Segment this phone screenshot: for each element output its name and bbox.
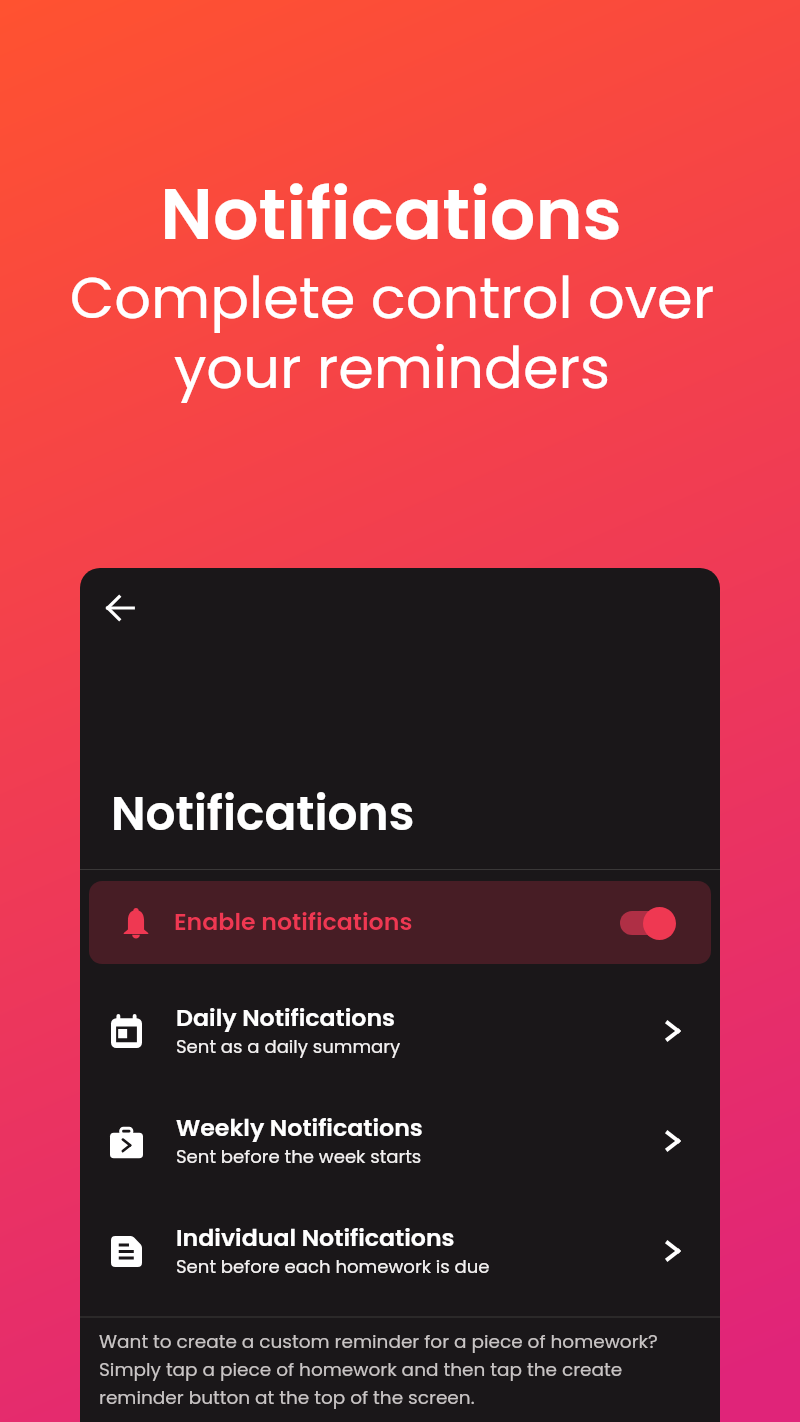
staticText: Sent before the week starts: [176, 1144, 422, 1169]
button[interactable]: Enable notifications: [89, 881, 711, 964]
staticText: Notifications: [0, 164, 791, 264]
button[interactable]: Daily Notifications: [80, 976, 720, 1086]
staticText: Individual Notifications: [176, 1221, 455, 1254]
button[interactable]: Back: [93, 581, 147, 635]
staticText: Daily Notifications: [176, 1001, 396, 1034]
staticText: Want to create a custom reminder for a p…: [99, 1329, 671, 1411]
staticText: Complete control over your reminders: [0, 258, 792, 408]
staticText: Notifications: [111, 781, 415, 847]
button[interactable]: Weekly Notifications: [80, 1086, 720, 1196]
button[interactable]: Enable notifications toggle, on: [618, 905, 681, 940]
staticText: Sent before each homework is due: [176, 1254, 490, 1279]
staticText: Weekly Notifications: [176, 1111, 423, 1144]
button[interactable]: Individual Notifications: [80, 1196, 720, 1306]
staticText: Sent as a daily summary: [176, 1034, 401, 1059]
staticText: Enable notifications: [174, 905, 413, 938]
